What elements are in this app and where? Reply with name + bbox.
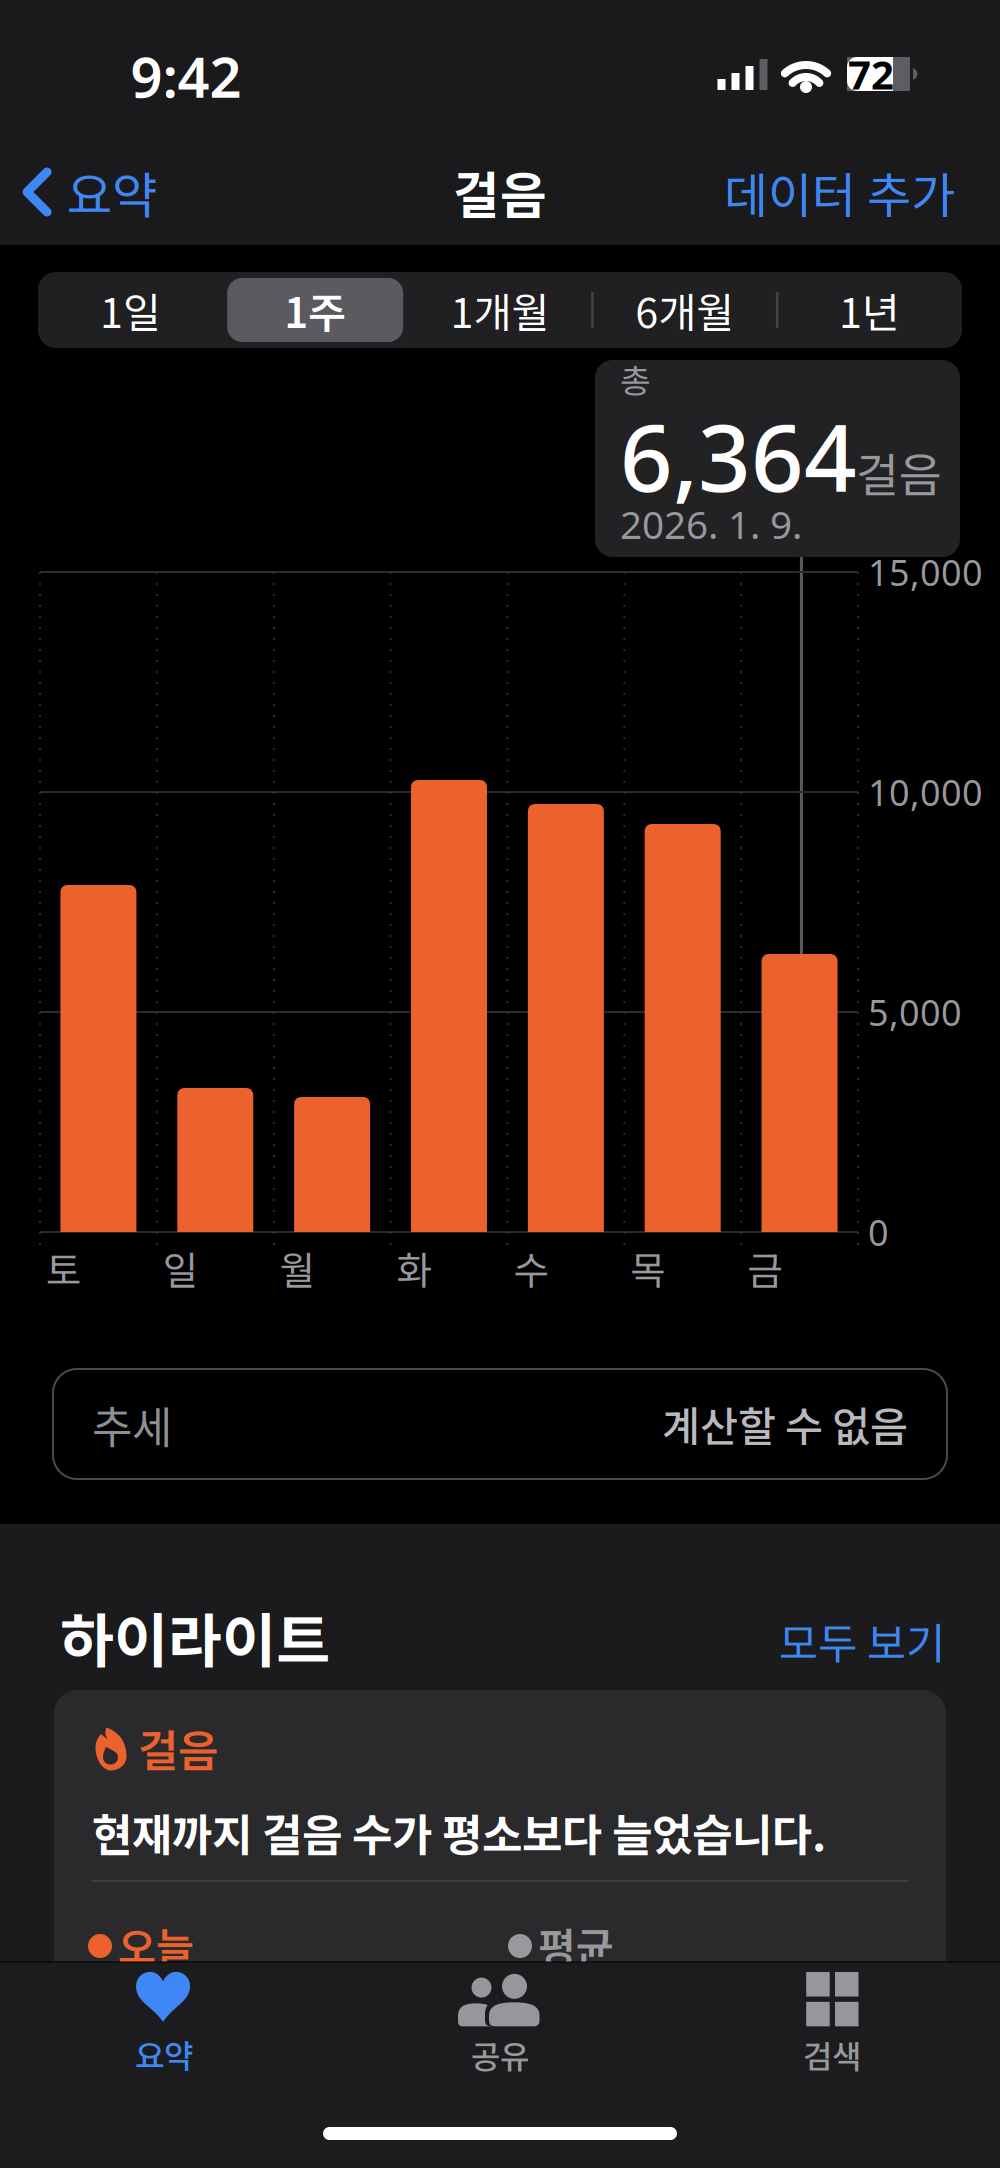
staticText: 평균 xyxy=(538,1915,614,1975)
staticText: 1개월 xyxy=(450,280,549,340)
staticText: 6개월 xyxy=(635,280,734,340)
button[interactable]: 6개월 xyxy=(595,272,775,348)
staticText: 걸음 xyxy=(453,155,547,229)
staticText: 0 xyxy=(868,1208,889,1256)
staticText: 1일 xyxy=(100,280,161,340)
staticText: 10,000 xyxy=(868,768,983,816)
button[interactable]: 모두 보기 xyxy=(705,1610,945,1672)
button[interactable]: 1년 xyxy=(780,272,960,348)
staticText: 6,364 xyxy=(620,395,857,517)
staticText: 9:42 xyxy=(130,39,241,113)
staticText: 일 xyxy=(163,1240,199,1296)
button[interactable]: 데이터 추가 xyxy=(635,157,955,227)
staticText: 1년 xyxy=(839,280,900,340)
staticText: 72 xyxy=(848,47,894,100)
staticText: 데이터 추가 xyxy=(724,157,955,227)
staticText: 하이라이트 xyxy=(60,1594,330,1679)
staticText: 공유 xyxy=(471,2031,529,2078)
button[interactable]: 추세 xyxy=(52,1368,948,1480)
staticText: 5,000 xyxy=(868,988,962,1036)
staticText: 추세 xyxy=(92,1392,172,1456)
staticText: 오늘 xyxy=(118,1915,194,1975)
staticText: 계산할 수 없음 xyxy=(662,1394,908,1454)
button[interactable]: 걸음 xyxy=(54,1690,946,2040)
staticText: 요약 xyxy=(67,156,157,228)
staticText: 총 xyxy=(620,355,651,403)
button[interactable]: 1주 xyxy=(225,272,405,348)
staticText: 화 xyxy=(397,1240,433,1296)
button[interactable]: 요약 xyxy=(23,156,157,228)
button[interactable]: 1개월 xyxy=(410,272,590,348)
button[interactable]: 공유 xyxy=(455,1970,545,2078)
staticText: 1주 xyxy=(284,280,346,340)
staticText: 검색 xyxy=(803,2031,861,2078)
button[interactable]: 요약 xyxy=(135,1971,193,2077)
staticText: 요약 xyxy=(135,2031,193,2077)
staticText: 걸음 xyxy=(138,1716,218,1780)
staticText: 2026. 1. 9. xyxy=(620,498,802,550)
button[interactable]: 1일 xyxy=(40,272,220,348)
button[interactable]: 검색 xyxy=(803,1970,861,2078)
staticText: 현재까지 걸음 수가 평소보다 늘었습니다. xyxy=(92,1800,826,1864)
staticText: 목 xyxy=(630,1240,666,1296)
staticText: 걸음 xyxy=(856,438,942,506)
staticText: 금 xyxy=(747,1240,783,1296)
staticText: 토 xyxy=(46,1240,82,1296)
staticText: 수 xyxy=(513,1240,549,1296)
staticText: 15,000 xyxy=(868,548,983,596)
staticText: 모두 보기 xyxy=(779,1610,945,1672)
staticText: 월 xyxy=(280,1240,316,1296)
